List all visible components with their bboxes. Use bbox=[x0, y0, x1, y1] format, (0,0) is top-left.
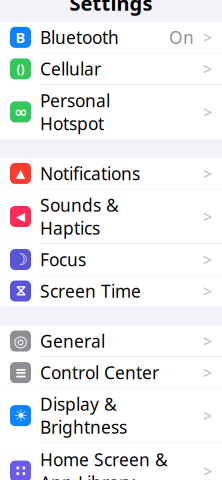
staticText: Sounds & Haptics bbox=[40, 193, 119, 239]
staticText: Screen Time bbox=[40, 279, 141, 302]
staticText: ∷ bbox=[15, 463, 25, 479]
button[interactable]: () bbox=[0, 53, 222, 85]
staticText: () bbox=[16, 61, 24, 77]
staticText: > bbox=[203, 405, 212, 426]
button[interactable]: ◎ bbox=[0, 325, 222, 357]
staticText: > bbox=[203, 330, 212, 352]
staticText: > bbox=[203, 460, 212, 480]
button[interactable]: ☀ bbox=[0, 389, 222, 443]
button[interactable]: ☽ bbox=[0, 244, 222, 275]
staticText: Personal Hotspot bbox=[40, 89, 110, 135]
staticText: ☀ bbox=[13, 406, 27, 425]
staticText: Control Center bbox=[40, 361, 159, 384]
staticText: ◎ bbox=[13, 332, 27, 350]
staticText: Focus bbox=[40, 248, 86, 271]
staticText: Home Screen & bbox=[40, 448, 168, 471]
staticText: General bbox=[40, 329, 105, 352]
button[interactable]: ∞ bbox=[0, 85, 222, 139]
staticText: Cellular bbox=[40, 57, 101, 80]
button[interactable]: ≡ bbox=[0, 357, 222, 388]
staticText: ▲ bbox=[16, 167, 25, 180]
staticText: On bbox=[169, 26, 194, 49]
button[interactable]: ◀ bbox=[0, 189, 222, 244]
staticText: ☽ bbox=[13, 250, 27, 269]
staticText: > bbox=[203, 163, 212, 184]
staticText: > bbox=[203, 362, 212, 383]
staticText: App Library bbox=[40, 471, 135, 480]
staticText: Display & Brightness bbox=[40, 393, 127, 439]
button[interactable]: B bbox=[0, 22, 222, 53]
staticText: > bbox=[203, 249, 212, 270]
staticText: ◀ bbox=[16, 210, 25, 223]
staticText: ⧖ bbox=[15, 284, 25, 298]
button[interactable]: ▲ bbox=[0, 158, 222, 189]
staticText: B bbox=[15, 28, 25, 47]
staticText: ≡ bbox=[14, 364, 26, 381]
staticText: > bbox=[203, 280, 212, 302]
staticText: Settings bbox=[69, 0, 152, 16]
staticText: ∞ bbox=[14, 103, 27, 121]
staticText: > bbox=[203, 58, 212, 79]
button[interactable]: ∷ bbox=[0, 443, 222, 480]
staticText: > bbox=[203, 27, 212, 48]
staticText: Notifications bbox=[40, 162, 140, 185]
staticText: > bbox=[203, 206, 212, 227]
staticText: > bbox=[203, 101, 212, 122]
button[interactable]: ⧖ bbox=[0, 275, 222, 306]
staticText: Bluetooth bbox=[40, 26, 119, 49]
